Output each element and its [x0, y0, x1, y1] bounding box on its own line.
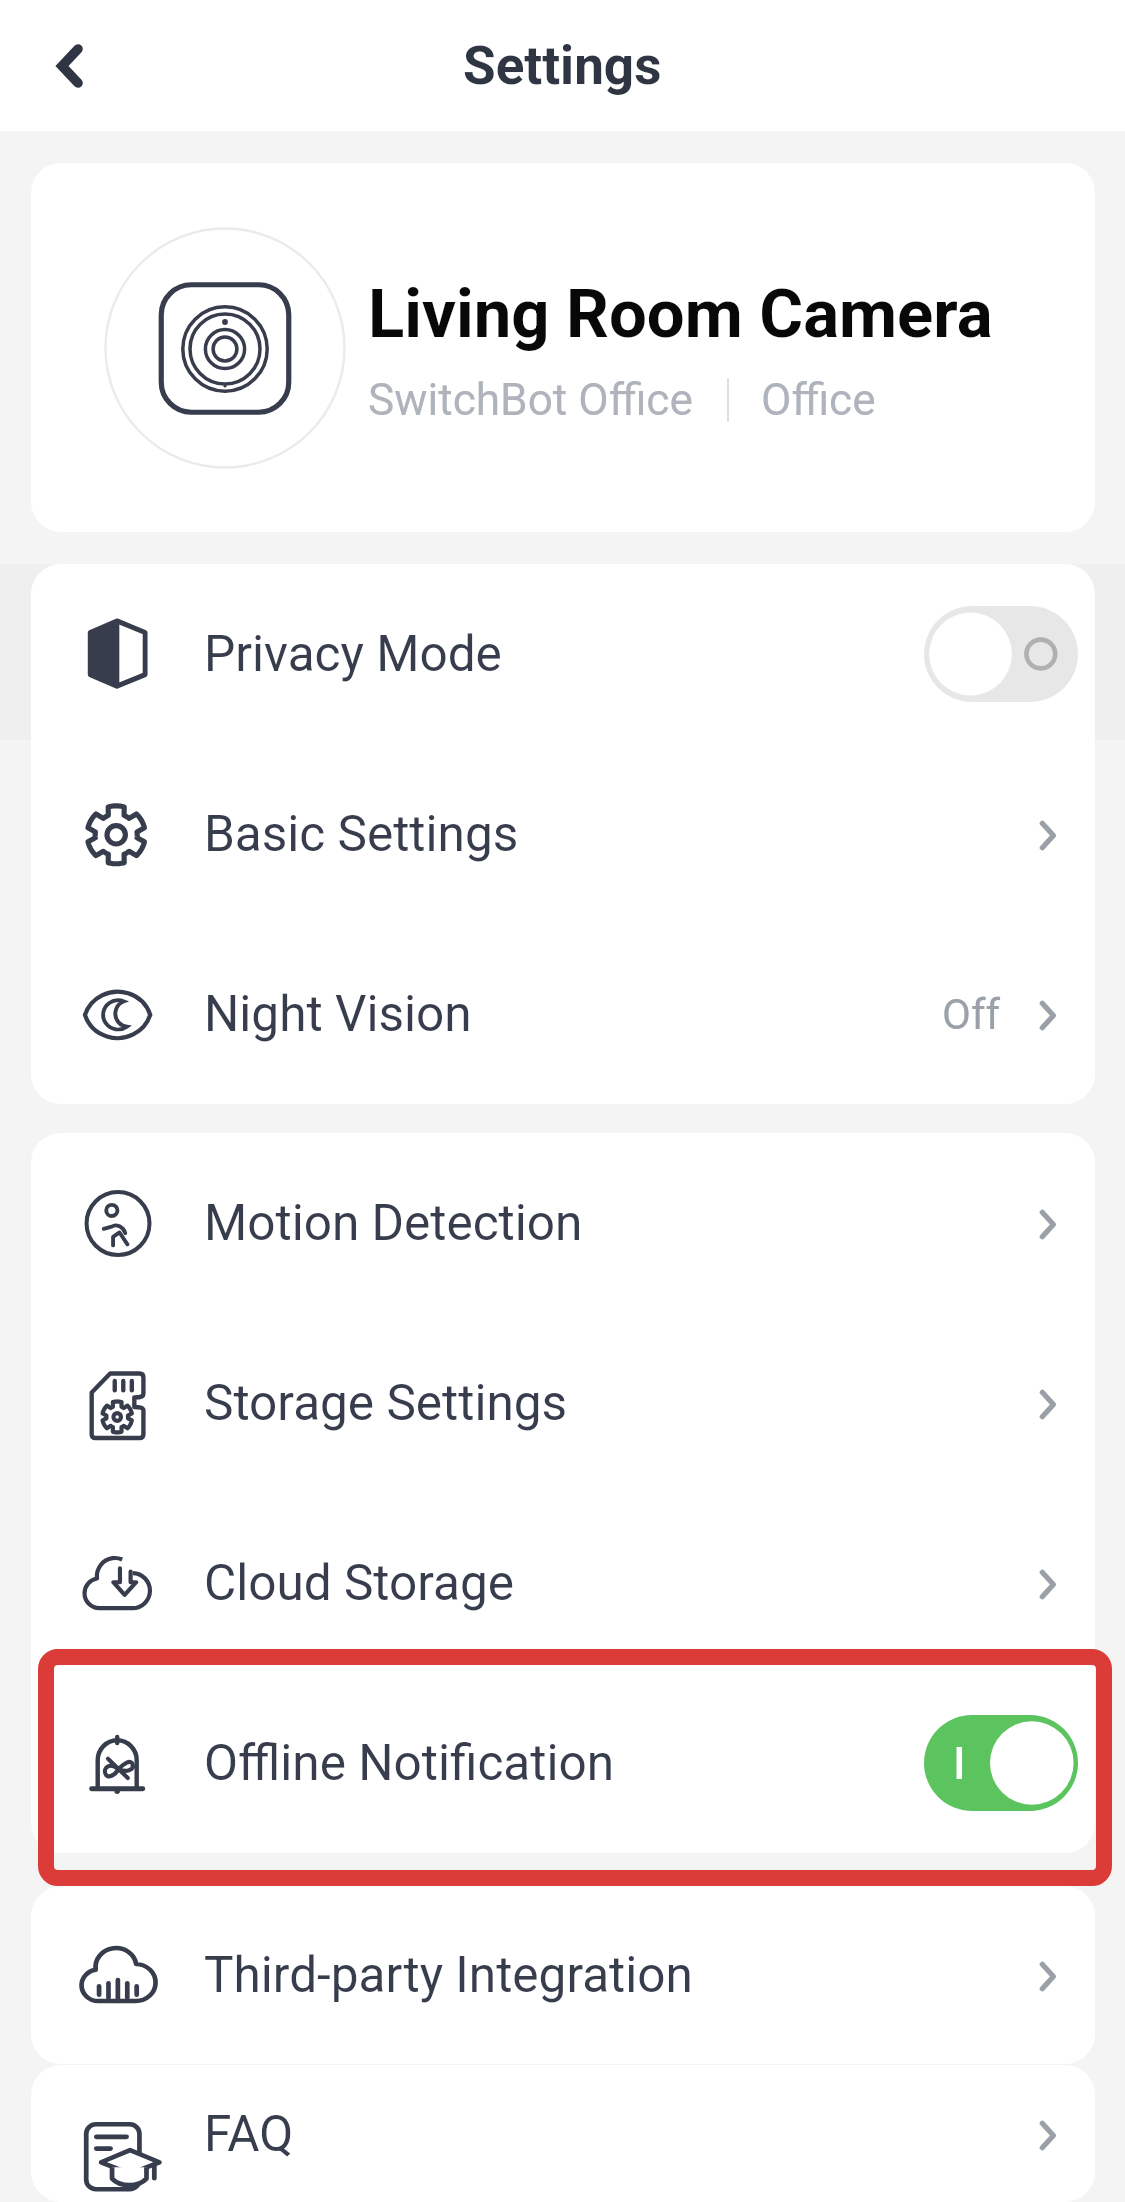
staticText: FAQ — [204, 2105, 294, 2163]
button[interactable]: Switch off — [924, 606, 1078, 702]
staticText: Settings — [463, 35, 662, 97]
button[interactable]: Basic Settings — [31, 744, 1095, 924]
button[interactable]: FAQ — [31, 2065, 1095, 2202]
staticText: Storage Settings — [204, 1374, 568, 1432]
button[interactable]: Storage Settings — [31, 1313, 1095, 1493]
staticText: Third-party Integration — [204, 1946, 693, 2004]
button[interactable]: Motion Detection — [31, 1133, 1095, 1313]
button[interactable]: Offline Notification — [31, 1673, 1095, 1853]
staticText: Office — [761, 374, 876, 426]
staticText: Privacy Mode — [204, 625, 502, 683]
staticText: Basic Settings — [204, 805, 519, 863]
staticText: Cloud Storage — [204, 1554, 515, 1612]
button[interactable]: Cloud Storage — [31, 1493, 1095, 1673]
button[interactable]: Privacy Mode — [31, 564, 1095, 744]
button[interactable]: Back — [20, 16, 120, 116]
button[interactable]: Third-party Integration — [31, 1886, 1095, 2064]
staticText: Living Room Camera — [368, 275, 993, 354]
button[interactable]: Night Vision — [31, 924, 1095, 1104]
staticText: Motion Detection — [204, 1194, 583, 1252]
staticText: Night Vision — [204, 985, 472, 1043]
staticText: Offline Notification — [204, 1734, 615, 1792]
button[interactable]: Switch on — [924, 1715, 1078, 1811]
staticText: Off — [942, 990, 1001, 1039]
staticText: SwitchBot Office — [368, 374, 693, 426]
